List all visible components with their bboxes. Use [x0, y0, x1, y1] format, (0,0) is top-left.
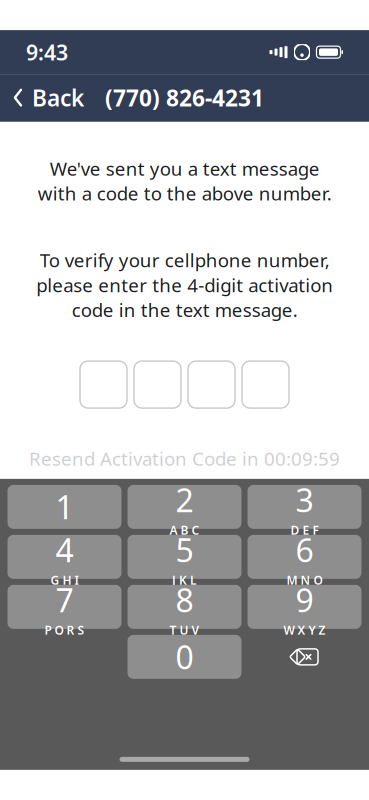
staticText: D E F — [290, 522, 318, 538]
button[interactable]: 5 — [127, 535, 241, 579]
staticText: 2 — [175, 479, 193, 521]
button[interactable]: 1 — [7, 485, 121, 529]
staticText: J K L — [172, 572, 197, 588]
button[interactable]: 3 — [247, 485, 361, 529]
staticText: To verify your cellphone number, please … — [36, 248, 333, 322]
button[interactable]: 9 — [247, 585, 361, 629]
staticText: (770) 826-4231 — [105, 83, 264, 113]
button[interactable]: 2 — [127, 485, 241, 529]
staticText: 7 — [55, 579, 73, 621]
staticText: 5 — [175, 529, 193, 571]
button[interactable]: 6 — [247, 535, 361, 579]
button[interactable]: Delete — [247, 635, 361, 679]
button[interactable]: 7 — [7, 585, 121, 629]
staticText: W X Y Z — [283, 622, 325, 638]
staticText: G H I — [50, 572, 78, 588]
button[interactable]: 8 — [127, 585, 241, 629]
staticText: 3 — [295, 479, 313, 521]
staticText: 8 — [175, 579, 193, 621]
staticText: 0 — [175, 636, 193, 678]
button[interactable]: 4 — [7, 535, 121, 579]
staticText: 9:43 — [26, 38, 68, 66]
staticText: 9 — [295, 579, 313, 621]
staticText: P Q R S — [44, 622, 84, 638]
staticText: We've sent you a text message with a cod… — [37, 156, 331, 206]
staticText: 4 — [55, 529, 73, 571]
staticText: M N O — [286, 572, 322, 588]
staticText: Back — [32, 83, 84, 113]
staticText: A B C — [169, 522, 199, 538]
staticText: 1 — [55, 486, 73, 528]
staticText: T U V — [169, 622, 199, 638]
button[interactable]: 0 — [127, 635, 241, 679]
staticText: Resend Activation Code in 00:09:59 — [29, 446, 340, 471]
staticText: 6 — [295, 529, 313, 571]
button[interactable]: Back — [0, 76, 96, 120]
